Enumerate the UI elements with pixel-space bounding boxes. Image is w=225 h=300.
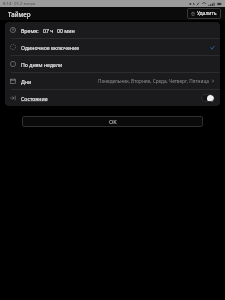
button[interactable]: OK <box>22 116 203 127</box>
staticText: OK <box>109 118 117 125</box>
other: By days of week <box>10 61 16 67</box>
other: Single activation <box>10 44 16 50</box>
staticText: Одиночное включение <box>21 44 80 51</box>
button[interactable]: Days <box>5 73 220 89</box>
other: Time <box>10 27 16 33</box>
staticText: Понедельник, Вторник, Среда, Четверг, Пя… <box>98 78 209 84</box>
button[interactable]: Удалить <box>187 8 221 19</box>
staticText: 00 мин <box>57 27 75 34</box>
other: State <box>10 95 16 101</box>
button[interactable]: By days of week <box>5 56 220 72</box>
staticText: По дням недели <box>21 61 63 68</box>
staticText: Таймер <box>8 10 31 18</box>
staticText: Удалить <box>197 10 217 17</box>
button[interactable]: Single activation <box>5 39 220 55</box>
button[interactable]: Time <box>5 22 220 38</box>
other: Days <box>10 78 16 84</box>
staticText: 8:14 <box>3 1 12 7</box>
button[interactable]: State <box>5 90 220 106</box>
staticText: 07 ч <box>43 27 54 34</box>
button[interactable]: Toggle state <box>201 94 215 102</box>
staticText: Время: <box>21 27 39 34</box>
staticText: 05.2 вчера <box>14 1 36 7</box>
staticText: Состояние <box>21 95 48 102</box>
staticText: Дни <box>21 78 32 85</box>
